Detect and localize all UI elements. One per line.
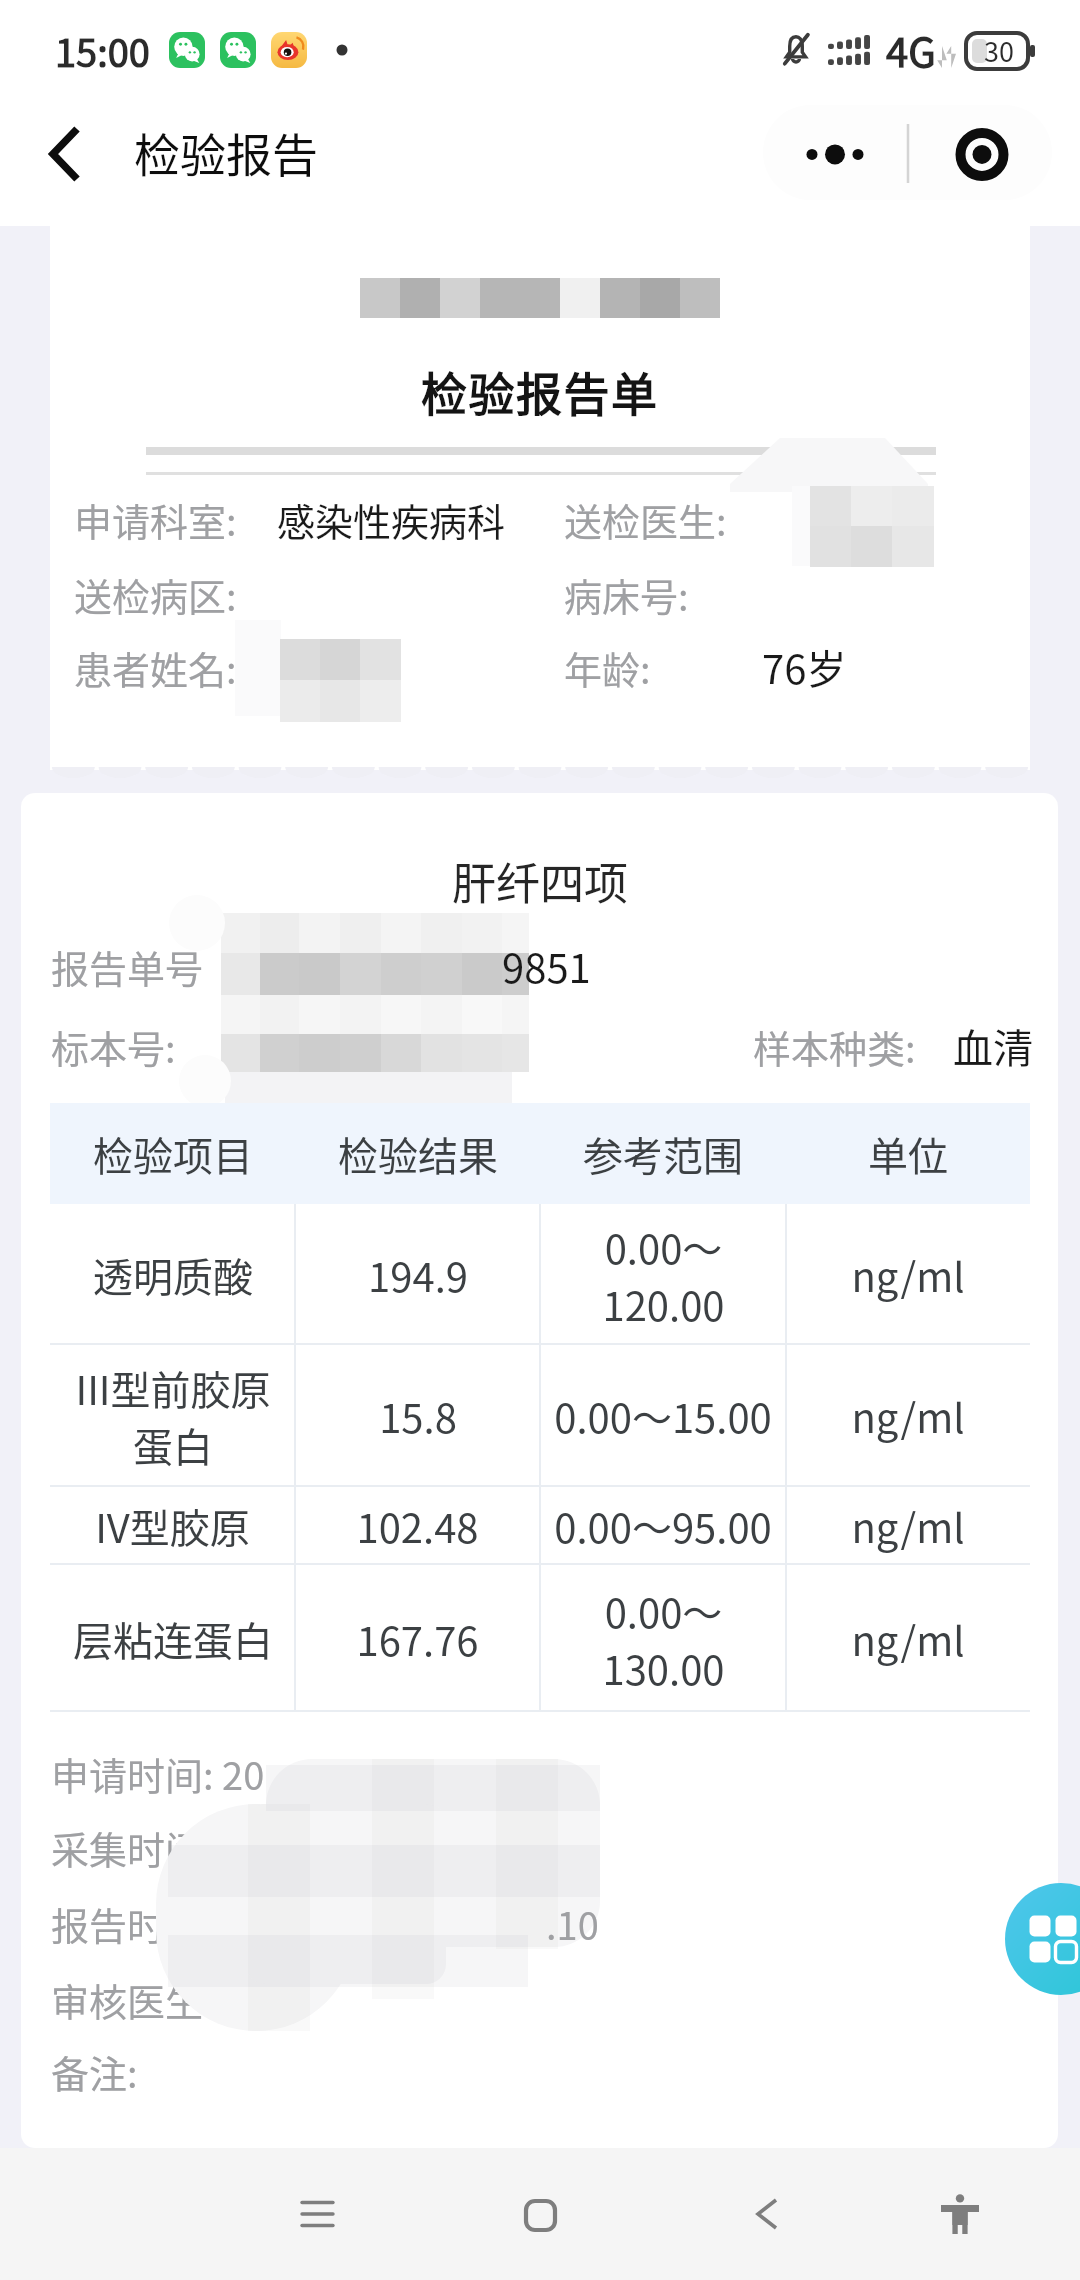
staticText: 血清 — [953, 1017, 1033, 1075]
staticText: ng/ml — [851, 1246, 965, 1304]
staticText: 层粘连蛋白 — [73, 1610, 273, 1668]
staticText: 194.9 — [368, 1246, 468, 1304]
staticText: ng/ml — [851, 1610, 965, 1668]
staticText: 0.00～95.00 — [554, 1497, 772, 1555]
staticText: ng/ml — [851, 1497, 965, 1555]
staticText: 0.00～15.00 — [554, 1387, 772, 1445]
button[interactable]: Back — [712, 2159, 822, 2269]
staticText: 167.76 — [356, 1610, 479, 1668]
staticText: 病床号: — [564, 567, 689, 622]
staticText: 检验报告单 — [421, 358, 659, 425]
staticText: 审核医生 — [51, 1972, 204, 2027]
staticText: 76岁 — [762, 638, 847, 696]
staticText: 0.00～ 120.00 — [602, 1218, 725, 1332]
staticText: 感染性疾病科 — [277, 492, 506, 547]
staticText: 检验项目 — [93, 1125, 253, 1183]
staticText: 患者姓名: — [74, 640, 237, 695]
button[interactable]: Home — [485, 2160, 595, 2270]
staticText: 9851 — [502, 937, 591, 995]
button[interactable]: Recent apps — [262, 2159, 372, 2269]
staticText: ng/ml — [851, 1387, 965, 1445]
staticText: 102.48 — [356, 1497, 479, 1555]
staticText: 检验报告 — [134, 119, 318, 186]
staticText: 采集时间 — [51, 1820, 204, 1875]
staticText: 备注: — [51, 2044, 138, 2099]
staticText: 检验结果 — [338, 1125, 498, 1183]
staticText: 年龄: — [564, 640, 651, 695]
staticText: 参考范围 — [583, 1125, 743, 1183]
staticText: 送检医生: — [564, 492, 727, 547]
staticText: 报告时 — [51, 1896, 166, 1951]
button[interactable]: Mini program menu — [763, 105, 1052, 200]
button[interactable]: Apps — [1005, 1883, 1080, 1995]
staticText: 4G — [886, 21, 936, 79]
staticText: 申请科室: — [74, 492, 237, 547]
staticText: 样本种类: — [753, 1019, 916, 1074]
staticText: 透明质酸 — [93, 1246, 253, 1304]
staticText: 标本号: — [51, 1019, 176, 1074]
staticText: .10 — [546, 1896, 599, 1951]
staticText: IV型胶原 — [95, 1497, 250, 1555]
staticText: 肝纤四项 — [452, 849, 628, 913]
button[interactable]: Accessibility — [905, 2159, 1015, 2269]
staticText: 申请时间: 20 — [51, 1746, 265, 1801]
staticText: III型前胶原 蛋白 — [75, 1359, 271, 1473]
staticText: 0.00～ 130.00 — [602, 1582, 725, 1696]
staticText: 15.8 — [379, 1387, 457, 1445]
staticText: 单位 — [868, 1125, 948, 1183]
staticText: 30 — [984, 31, 1014, 70]
staticText: 报告单号 — [51, 939, 204, 994]
button[interactable]: Back — [29, 118, 101, 190]
staticText: 15:00 — [55, 23, 150, 78]
staticText: 送检病区: — [74, 567, 237, 622]
